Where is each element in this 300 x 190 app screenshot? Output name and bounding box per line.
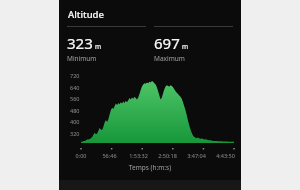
staticText: m xyxy=(95,42,102,51)
staticText: 560 xyxy=(70,95,80,102)
staticText: 2:50:18 xyxy=(153,152,182,159)
staticText: 4:43:50 xyxy=(211,152,240,159)
button[interactable]: 323 xyxy=(67,26,146,63)
staticText: 1:53:32 xyxy=(124,152,153,159)
staticText: 697 xyxy=(154,33,180,53)
button[interactable]: 697 xyxy=(154,26,233,63)
button[interactable]: Altitude chart xyxy=(59,71,241,163)
staticText: Maximum xyxy=(154,54,185,63)
staticText: 3:47:04 xyxy=(182,152,211,159)
staticText: 640 xyxy=(70,84,80,91)
button[interactable]: Altitude xyxy=(59,0,241,26)
staticText: 56:46 xyxy=(95,152,124,159)
staticText: m xyxy=(182,42,189,51)
staticText: Altitude xyxy=(68,8,104,21)
staticText: 320 xyxy=(70,130,80,137)
staticText: Temps (h:m:s) xyxy=(59,163,241,172)
staticText: Minimum xyxy=(67,54,97,63)
staticText: 480 xyxy=(70,107,80,114)
staticText: 720 xyxy=(70,72,80,79)
staticText: 323 xyxy=(67,33,93,53)
staticText: 0:00 xyxy=(67,152,95,159)
staticText: 400 xyxy=(70,118,80,125)
